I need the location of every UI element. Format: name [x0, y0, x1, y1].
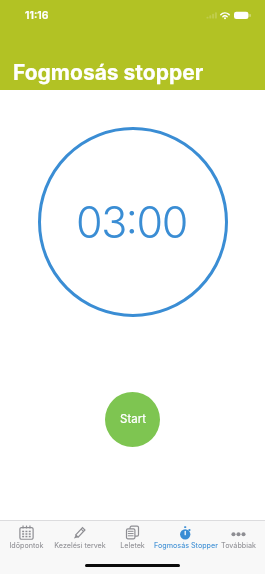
- button[interactable]: Kezelési tervek: [53, 521, 106, 550]
- staticText: Kezelési tervek: [54, 541, 106, 550]
- staticText: Időpontok: [9, 541, 44, 550]
- staticText: Továbbiak: [221, 541, 256, 550]
- staticText: Fogmosás stopper: [13, 60, 204, 85]
- button[interactable]: Fogmosás Stopper: [159, 521, 212, 550]
- staticText: Fogmosás Stopper: [154, 541, 218, 550]
- button[interactable]: Leletek: [106, 521, 159, 550]
- button[interactable]: Időpontok: [0, 521, 53, 550]
- staticText: 03:00: [76, 196, 187, 248]
- button[interactable]: Start: [105, 392, 160, 447]
- staticText: 11:16: [25, 9, 49, 22]
- button[interactable]: Továbbiak: [212, 521, 265, 550]
- staticText: Start: [120, 412, 146, 426]
- staticText: Leletek: [120, 541, 145, 550]
